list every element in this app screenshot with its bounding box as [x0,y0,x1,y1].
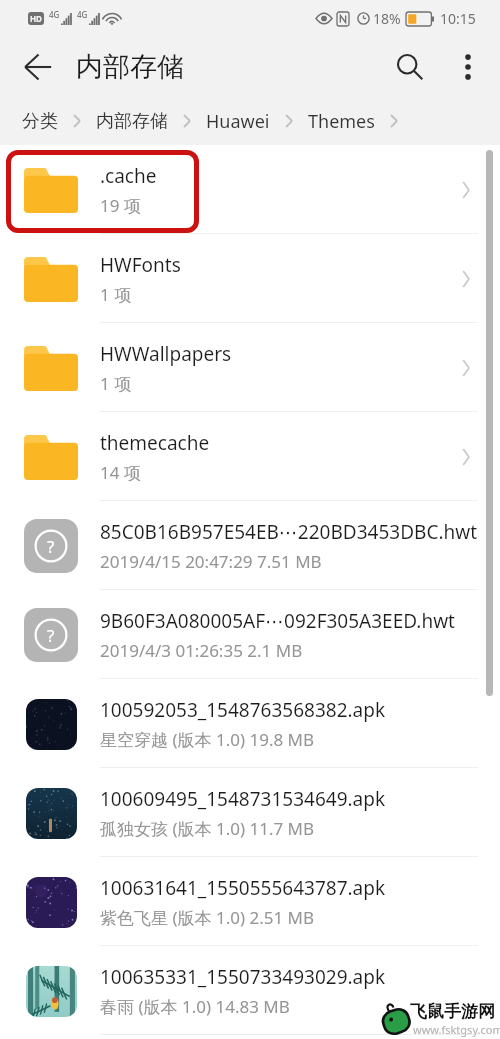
staticText: 14 项 [100,461,141,484]
staticText: HD [30,13,42,24]
staticText: 100631641_1550555643787.apk [100,875,386,901]
button[interactable]: 100592053_1548763568382.apk [0,679,500,768]
button[interactable]: HWWallpapers [0,323,500,412]
staticText: Themes [308,109,375,134]
staticText: 春雨 (版本 1.0) 14.83 MB [100,995,290,1018]
button[interactable]: Huawei [204,109,272,134]
staticText: .cache [100,163,157,189]
staticText: 内部存储 [76,50,184,84]
button[interactable]: ? [0,501,500,590]
staticText: 1 项 [100,372,132,395]
button[interactable]: 分类 [20,110,60,133]
button[interactable]: themecache [0,412,500,501]
button[interactable]: Search [386,43,434,91]
staticText: ? [47,624,55,647]
staticText: Huawei [206,109,270,134]
staticText: 10:15 [440,9,476,28]
staticText: 4G [77,9,88,20]
staticText: ? [47,535,55,558]
staticText: HWWallpapers [100,341,232,367]
button[interactable]: 100635331_1550733493029.apk [0,946,500,1035]
button[interactable]: Back [14,43,62,91]
button[interactable]: 100609495_1548731534649.apk [0,768,500,857]
staticText: 2019/4/15 20:47:29 7.51 MB [100,550,322,573]
button[interactable]: 100631641_1550555643787.apk [0,857,500,946]
staticText: 85C0B16B957E54EB⋯220BD3453DBC.hwt [100,519,478,545]
button[interactable]: ? [0,590,500,679]
button[interactable]: .cache [0,145,500,234]
staticText: 4G [49,9,60,20]
staticText: 内部存储 [96,110,168,133]
button[interactable]: More options [444,43,492,91]
staticText: 孤独女孩 (版本 1.0) 11.7 MB [100,817,315,840]
staticText: 100635331_1550733493029.apk [100,964,386,990]
staticText: 2019/4/3 01:26:35 2.1 MB [100,639,303,662]
button[interactable]: Themes [306,109,377,134]
staticText: 19 项 [100,194,141,217]
staticText: themecache [100,430,210,456]
staticText: www.fsktgsy.com [413,1022,500,1037]
button[interactable]: 内部存储 [94,110,170,133]
staticText: HWFonts [100,252,181,278]
staticText: 18% [373,9,401,28]
staticText: 1 项 [100,283,132,306]
staticText: 紫色飞星 (版本 1.0) 2.51 MB [100,906,315,929]
staticText: 星空穿越 (版本 1.0) 19.8 MB [100,728,315,751]
button[interactable]: HWFonts [0,234,500,323]
staticText: 100592053_1548763568382.apk [100,697,386,723]
staticText: 100609495_1548731534649.apk [100,786,386,812]
staticText: 分类 [22,110,58,133]
staticText: 9B60F3A080005AF⋯092F305A3EED.hwt [100,608,455,634]
staticText: 飞鼠手游网 [410,1001,495,1022]
